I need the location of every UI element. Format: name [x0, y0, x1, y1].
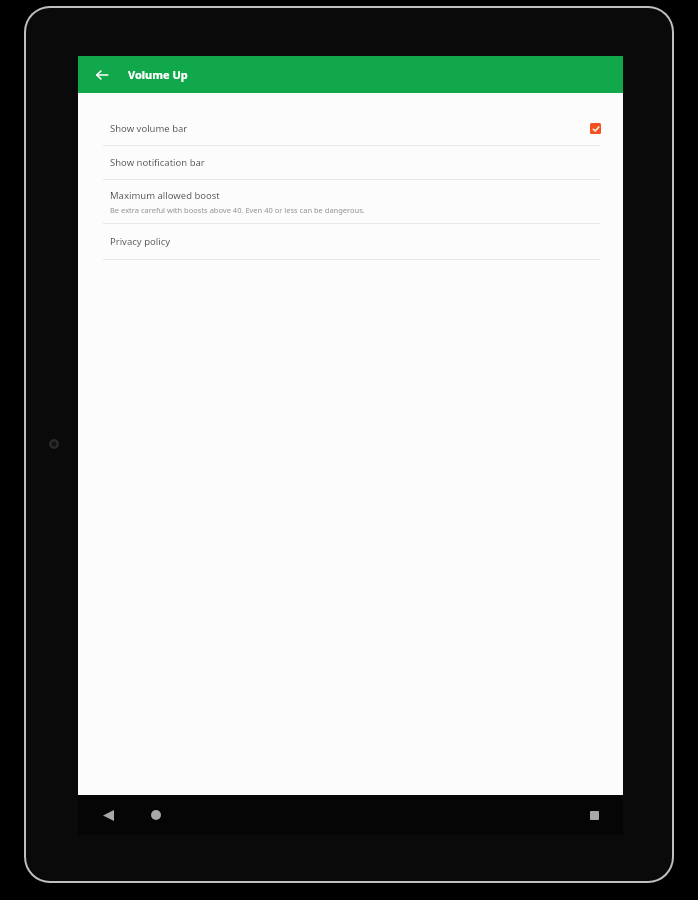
button[interactable]: Privacy policy: [78, 224, 623, 259]
staticText: Be extra careful with boosts above 40. E…: [110, 205, 365, 215]
button[interactable]: Home: [142, 801, 170, 829]
button[interactable]: Show volume bar: [78, 111, 623, 145]
staticText: Show notification bar: [110, 156, 205, 169]
button[interactable]: Show notification bar: [78, 146, 623, 179]
staticText: Show volume bar: [110, 122, 188, 135]
staticText: Maximum allowed boost: [110, 189, 220, 202]
button[interactable]: Recent apps: [580, 801, 608, 829]
button[interactable]: Navigate up: [86, 56, 118, 93]
button[interactable]: Back: [94, 801, 122, 829]
staticText: Volume Up: [128, 67, 188, 82]
staticText: Privacy policy: [110, 235, 171, 248]
button[interactable]: Maximum allowed boost: [78, 180, 623, 223]
